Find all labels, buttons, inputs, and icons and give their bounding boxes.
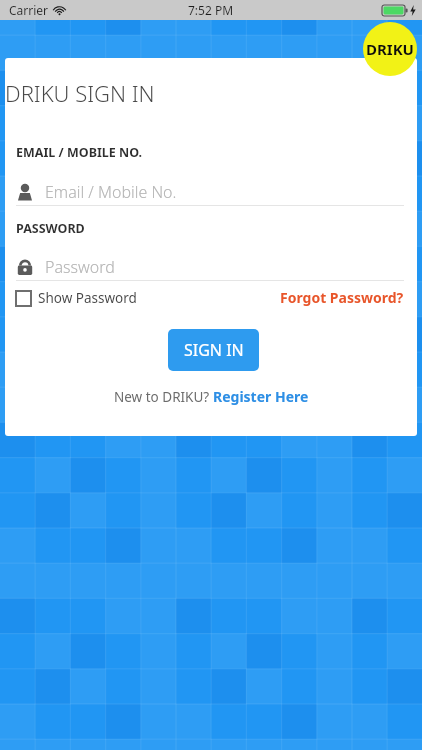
staticText: DRIKU SIGN IN	[5, 78, 417, 108]
staticText: Show Password	[38, 289, 137, 307]
staticText: EMAIL / MOBILE NO.	[16, 144, 143, 161]
button[interactable]: Password	[16, 253, 404, 280]
button[interactable]: SIGN IN	[168, 329, 259, 371]
staticText: Email / Mobile No.	[45, 181, 177, 203]
staticText: Carrier	[9, 2, 49, 18]
button[interactable]: Show Password	[16, 289, 137, 307]
button[interactable]: Register Here	[213, 387, 309, 406]
staticText: DRIKU	[366, 39, 414, 59]
staticText: PASSWORD	[16, 220, 85, 237]
button[interactable]: DRIKU logo	[363, 22, 417, 76]
button[interactable]: Email / Mobile No.	[16, 178, 404, 205]
button[interactable]: Forgot Password?	[280, 288, 404, 307]
staticText: SIGN IN	[184, 339, 244, 361]
staticText: Password	[45, 256, 115, 278]
staticText: New to DRIKU?	[114, 388, 213, 406]
staticText: 7:52 PM	[188, 2, 234, 18]
